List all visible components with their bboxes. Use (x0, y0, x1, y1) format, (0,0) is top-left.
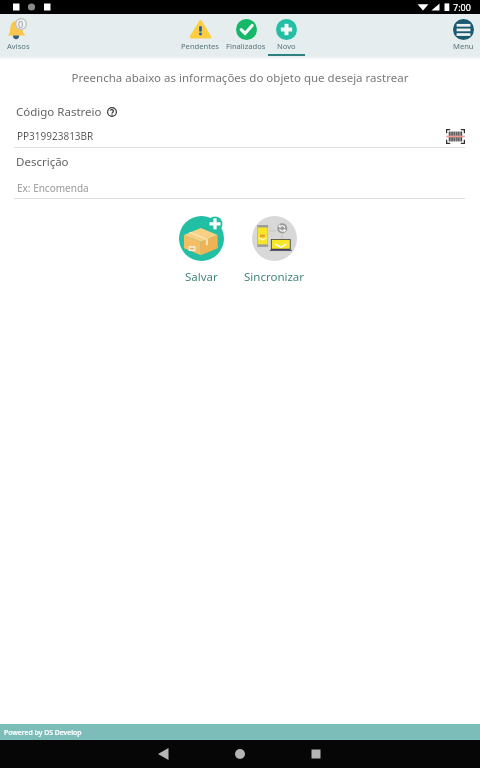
staticText: 7:00 (453, 1, 471, 13)
staticText: Novo (277, 41, 296, 51)
staticText: Pendentes (181, 41, 219, 51)
staticText: 0 (18, 18, 24, 30)
staticText: Avisos (7, 41, 30, 51)
staticText: Preencha abaixo as informações do objeto… (0, 70, 480, 86)
button[interactable]: Escanear código de barras (445, 128, 465, 144)
staticText: Finalizados (226, 41, 266, 51)
button[interactable]: Novo (260, 14, 312, 56)
staticText: Ex: Encomenda (17, 181, 89, 195)
button[interactable]: 0 (0, 14, 37, 51)
button[interactable]: Salvar (156, 216, 246, 285)
button[interactable]: Sincronizar (229, 216, 319, 285)
staticText: Salvar (185, 269, 218, 285)
staticText: Descrição (16, 154, 69, 170)
button[interactable]: Finalizados (220, 14, 272, 56)
staticText: Menu (453, 41, 474, 51)
button[interactable]: PP319923813BR (17, 128, 445, 144)
button[interactable]: Pendentes (174, 14, 226, 56)
staticText: Código Rastreio (16, 104, 102, 120)
staticText: PP319923813BR (17, 129, 94, 143)
button[interactable]: Menu (453, 19, 474, 51)
button[interactable]: Ex: Encomenda (17, 180, 465, 196)
button[interactable]: Ajuda (107, 107, 117, 117)
staticText: Powered by DS Develop (4, 728, 82, 737)
staticText: Sincronizar (244, 269, 305, 285)
